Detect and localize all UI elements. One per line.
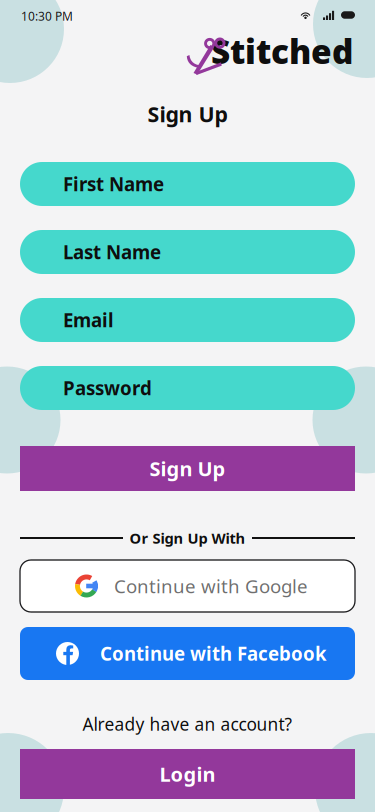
staticText: Stitched	[211, 29, 353, 73]
button[interactable]: Email	[20, 298, 355, 342]
staticText: 10:30 PM	[21, 8, 73, 24]
staticText: Or Sign Up With	[129, 528, 245, 548]
staticText: Email	[63, 308, 114, 332]
staticText: Password	[63, 376, 152, 400]
staticText: Sign Up	[149, 455, 225, 482]
button[interactable]: Continue with Facebook	[20, 627, 355, 680]
staticText: Already have an account?	[82, 712, 292, 735]
button[interactable]: First Name	[20, 162, 355, 206]
staticText: Last Name	[63, 240, 161, 264]
staticText: First Name	[63, 172, 164, 196]
staticText: Sign Up	[147, 100, 227, 128]
button[interactable]: Continue with Google	[20, 560, 355, 612]
button[interactable]: Password	[20, 366, 355, 410]
staticText: Continue with Facebook	[100, 641, 327, 666]
button[interactable]: Last Name	[20, 230, 355, 274]
staticText: Continue with Google	[114, 574, 308, 598]
staticText: Login	[159, 761, 215, 787]
button[interactable]: Login	[20, 749, 355, 799]
button[interactable]: Sign Up	[20, 446, 355, 491]
